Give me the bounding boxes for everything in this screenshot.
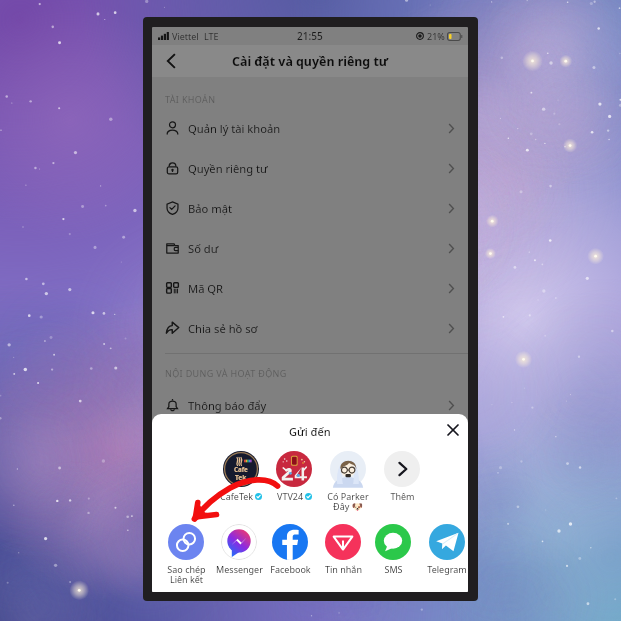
staticText: Tin nhắn [325, 563, 362, 575]
button[interactable]: Back [159, 49, 183, 73]
staticText: Quản lý tài khoản [188, 121, 449, 136]
button[interactable]: Quản lý tài khoản [152, 108, 468, 148]
staticText: Quyền riêng tư [188, 161, 449, 176]
staticText: Có Parker Đây 🐶 [327, 490, 369, 513]
button[interactable]: Chia sẻ hồ sơ [152, 308, 468, 348]
staticText: TÀI KHOẢN [165, 93, 216, 105]
staticText: Mã QR [188, 281, 449, 296]
button[interactable]: Thông báo đẩy [152, 385, 468, 425]
button[interactable]: Close [442, 419, 464, 441]
button[interactable]: Bảo mật [152, 188, 468, 228]
staticText: SMS [384, 563, 403, 575]
staticText: Facebook [270, 563, 311, 575]
staticText: Tek [235, 473, 247, 482]
staticText: NỘI DUNG VÀ HOẠT ĐỘNG [165, 367, 287, 379]
staticText: Chia sẻ hồ sơ [188, 321, 449, 336]
button[interactable]: Tin nhắn [317, 524, 369, 575]
button[interactable]: Thêm [376, 451, 428, 502]
button[interactable]: Mã QR [152, 268, 468, 308]
staticText: Gửi đến [289, 424, 331, 439]
staticText: Messenger [216, 563, 263, 575]
staticText: VTV24 [277, 490, 304, 502]
button[interactable]: Quyền riêng tư [152, 148, 468, 188]
button[interactable]: VTV24 [268, 451, 320, 502]
button[interactable]: Messenger [213, 524, 265, 575]
button[interactable]: Sao chép Liên kết [160, 524, 212, 586]
staticText: LTE [204, 30, 219, 42]
staticText: Cài đặt và quyền riêng tư [232, 53, 389, 70]
staticText: Sao chép Liên kết [167, 563, 206, 586]
staticText: Thêm [390, 490, 415, 502]
staticText: Bảo mật [188, 201, 449, 216]
staticText: Telegram [427, 563, 467, 575]
staticText: Cafe [234, 465, 248, 473]
button[interactable]: Cafe [215, 451, 267, 502]
staticText: CafeTek [220, 490, 254, 502]
button[interactable]: Có Parker Đây 🐶 [322, 451, 374, 513]
button[interactable]: Telegram [421, 524, 468, 575]
staticText: Thông báo đẩy [188, 398, 449, 413]
staticText: 21:55 [297, 29, 323, 43]
staticText: Số dư [188, 241, 449, 256]
button[interactable]: Facebook [264, 524, 316, 575]
button[interactable]: SMS [367, 524, 419, 575]
button[interactable]: Số dư [152, 228, 468, 268]
staticText: 21% [427, 30, 445, 42]
staticText: Viettel [172, 30, 199, 42]
